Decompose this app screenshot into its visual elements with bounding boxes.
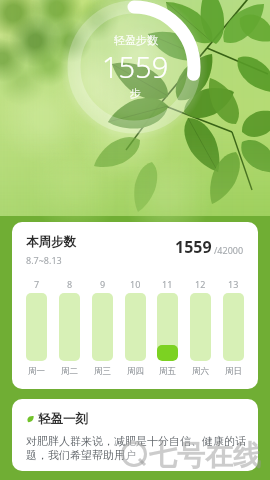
staticText: 周一 (28, 366, 45, 377)
staticText: 13 (228, 278, 239, 290)
staticText: 对肥胖人群来说，减肥是十分自信、健康的话题，我们希望帮助用户 (26, 434, 246, 462)
staticText: 本周步数 (26, 234, 76, 250)
staticText: 周三 (94, 366, 111, 377)
staticText: 七号在线 (149, 438, 261, 473)
staticText: 8 (67, 278, 73, 290)
staticText: 1559 (175, 236, 212, 258)
staticText: 步 (130, 86, 141, 100)
staticText: 9 (100, 278, 106, 290)
button[interactable]: 本周步数 (12, 222, 258, 389)
staticText: 周四 (127, 366, 144, 377)
staticText: 周五 (159, 366, 176, 377)
staticText: 8.7~8.13 (26, 254, 62, 266)
staticText: 轻盈一刻 (38, 411, 88, 427)
staticText: 周二 (61, 366, 78, 377)
staticText: 周日 (225, 366, 242, 377)
staticText: 7 (34, 278, 40, 290)
staticText: 11 (162, 278, 173, 290)
staticText: /42000 (214, 244, 244, 256)
button[interactable]: 轻盈一刻 (12, 399, 258, 471)
staticText: 周六 (192, 366, 209, 377)
staticText: 12 (195, 278, 206, 290)
staticText: 10 (130, 278, 141, 290)
staticText: 轻盈步数 (114, 33, 158, 47)
staticText: 1559 (102, 47, 169, 86)
